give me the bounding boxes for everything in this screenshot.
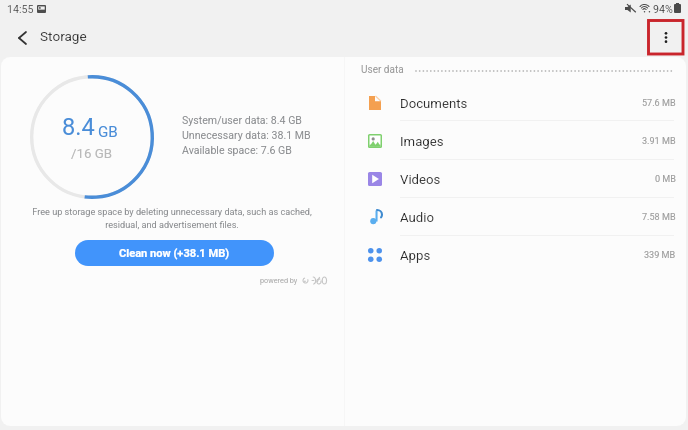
- staticText: Documents: [400, 96, 468, 111]
- staticText: 14:55: [7, 3, 34, 16]
- button[interactable]: Clean now (+38.1 MB): [75, 240, 274, 266]
- staticText: /16 GB: [71, 146, 113, 162]
- staticText: 0 MB: [655, 174, 676, 185]
- button[interactable]: Apps: [344, 236, 686, 274]
- staticText: Images: [400, 134, 444, 149]
- staticText: Videos: [400, 172, 441, 187]
- button[interactable]: Audio: [344, 198, 686, 236]
- staticText: Audio: [400, 210, 434, 225]
- staticText: Storage: [40, 28, 87, 44]
- staticText: Apps: [400, 248, 431, 263]
- button[interactable]: Videos: [344, 160, 686, 198]
- staticText: System/user data: 8.4 GB Unnecessary dat…: [182, 114, 311, 156]
- staticText: powered by: [260, 276, 298, 285]
- button[interactable]: Back: [4, 19, 41, 57]
- staticText: 339 MB: [644, 250, 676, 261]
- staticText: GB: [98, 123, 118, 141]
- button[interactable]: Documents: [344, 84, 686, 122]
- staticText: User data: [361, 64, 404, 76]
- staticText: Clean now (+38.1 MB): [119, 247, 230, 260]
- staticText: 57.6 MB: [642, 98, 676, 109]
- staticText: 8.4: [62, 113, 95, 141]
- staticText: 3.91 MB: [642, 136, 676, 147]
- staticText: Free up storage space by deleting unnece…: [18, 207, 326, 230]
- button[interactable]: More options: [647, 19, 684, 55]
- staticText: 7.58 MB: [642, 212, 676, 223]
- staticText: 94%: [653, 3, 673, 16]
- button[interactable]: Images: [344, 122, 686, 160]
